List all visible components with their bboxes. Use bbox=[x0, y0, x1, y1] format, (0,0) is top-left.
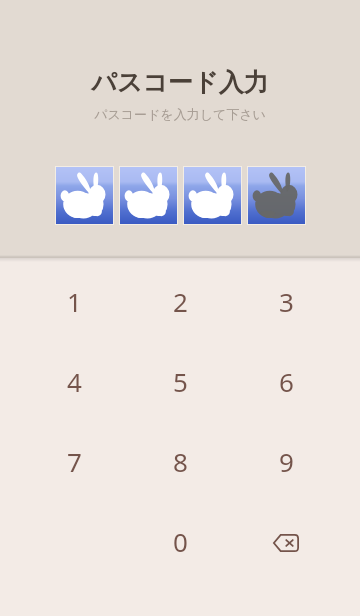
button[interactable]: 3 bbox=[233, 261, 339, 341]
button[interactable]: 8 bbox=[127, 421, 233, 501]
button[interactable]: 5 bbox=[127, 341, 233, 421]
staticText: 0 bbox=[173, 524, 188, 559]
staticText: 5 bbox=[173, 364, 188, 399]
staticText: 8 bbox=[173, 444, 188, 479]
button[interactable]: 6 bbox=[233, 341, 339, 421]
button[interactable]: Delete bbox=[233, 501, 339, 581]
button[interactable]: 0 bbox=[127, 501, 233, 581]
staticText: 2 bbox=[173, 284, 188, 319]
button[interactable]: 2 bbox=[127, 261, 233, 341]
staticText: 1 bbox=[67, 284, 82, 319]
staticText: 9 bbox=[279, 444, 294, 479]
staticText: パスコードを入力して下さい bbox=[94, 106, 266, 122]
staticText: 4 bbox=[67, 364, 82, 399]
staticText: 3 bbox=[279, 284, 294, 319]
button[interactable]: 9 bbox=[233, 421, 339, 501]
button[interactable]: 7 bbox=[21, 421, 127, 501]
staticText: 7 bbox=[67, 444, 82, 479]
staticText: 6 bbox=[279, 364, 294, 399]
button[interactable]: 4 bbox=[21, 341, 127, 421]
button[interactable]: 1 bbox=[21, 261, 127, 341]
staticText: パスコード入力 bbox=[91, 67, 269, 98]
